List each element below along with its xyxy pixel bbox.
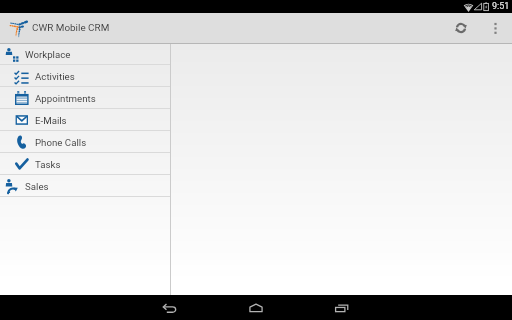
- button[interactable]: Workplace: [0, 44, 170, 65]
- staticText: Sales: [25, 181, 49, 192]
- button[interactable]: Home: [243, 295, 269, 320]
- button[interactable]: Sync: [442, 13, 480, 43]
- button[interactable]: Appointments: [0, 87, 170, 109]
- button[interactable]: Sales: [0, 175, 170, 197]
- staticText: Workplace: [25, 49, 71, 60]
- staticText: Phone Calls: [35, 137, 87, 148]
- button[interactable]: Back: [157, 295, 183, 320]
- staticText: Tasks: [35, 159, 61, 170]
- button[interactable]: More options: [480, 13, 510, 43]
- staticText: Appointments: [35, 93, 96, 104]
- button[interactable]: Phone Calls: [0, 131, 170, 153]
- staticText: E-Mails: [35, 115, 67, 126]
- button[interactable]: E-Mails: [0, 109, 170, 131]
- staticText: CWR Mobile CRM: [32, 22, 110, 34]
- staticText: Activities: [35, 71, 75, 82]
- button[interactable]: Activities: [0, 65, 170, 87]
- button[interactable]: Tasks: [0, 153, 170, 175]
- button[interactable]: Recent apps: [329, 295, 355, 320]
- staticText: 9:51: [492, 1, 510, 12]
